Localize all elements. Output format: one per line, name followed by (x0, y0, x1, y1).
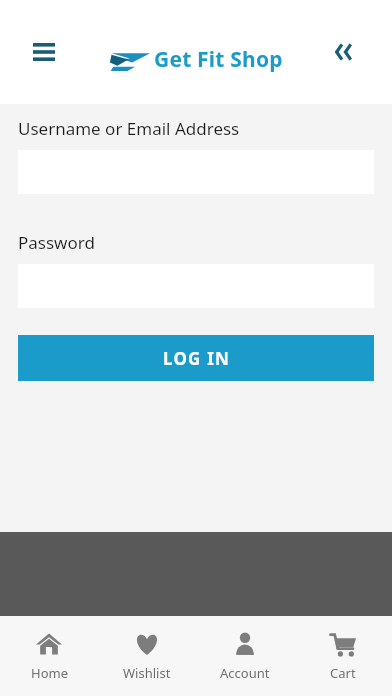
staticText: Home (31, 664, 68, 682)
staticText: Wishlist (123, 664, 171, 682)
button[interactable]: Wishlist (98, 616, 196, 696)
button[interactable]: LOG IN (18, 335, 374, 381)
staticText: Password (18, 231, 95, 254)
staticText: Get Fit Shop (154, 45, 283, 74)
staticText: LOG IN (163, 347, 230, 370)
button[interactable]: Back (322, 29, 368, 75)
button[interactable]: Cart (294, 616, 392, 696)
staticText: Username or Email Address (18, 117, 240, 140)
button[interactable]: Home (0, 616, 98, 696)
staticText: Cart (330, 664, 356, 682)
staticText: Account (220, 664, 270, 682)
button[interactable]: Account (196, 616, 294, 696)
button[interactable]: Menu (22, 30, 66, 74)
button[interactable]: Get Fit Shop (109, 45, 283, 74)
